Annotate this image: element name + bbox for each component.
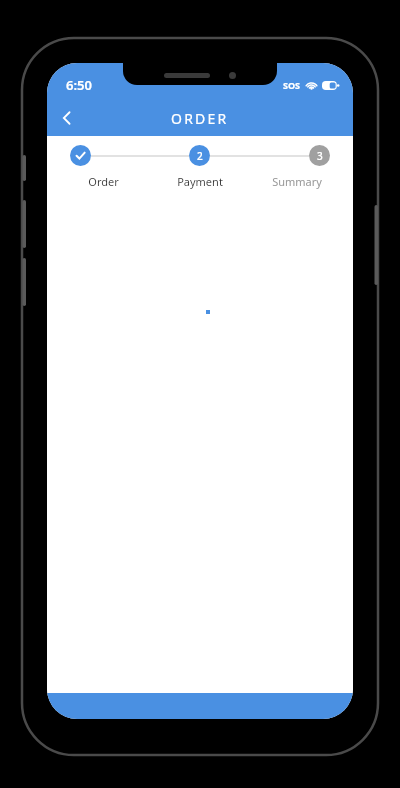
- staticText: 2: [197, 149, 203, 163]
- staticText: SOS: [283, 79, 301, 91]
- staticText: Order: [88, 174, 119, 189]
- button[interactable]: Payment: [151, 174, 248, 189]
- staticText: ORDER: [171, 109, 229, 128]
- button[interactable]: Order: [55, 174, 151, 189]
- button[interactable]: Continue: [47, 693, 353, 719]
- button[interactable]: 3: [309, 145, 330, 166]
- button[interactable]: Order completed: [70, 145, 91, 166]
- staticText: 3: [317, 149, 323, 163]
- button[interactable]: Summary: [248, 174, 345, 189]
- button[interactable]: 2: [189, 145, 210, 166]
- staticText: Payment: [177, 174, 223, 189]
- staticText: Summary: [272, 174, 322, 189]
- button[interactable]: Back: [47, 100, 87, 136]
- staticText: 6:50: [66, 76, 92, 94]
